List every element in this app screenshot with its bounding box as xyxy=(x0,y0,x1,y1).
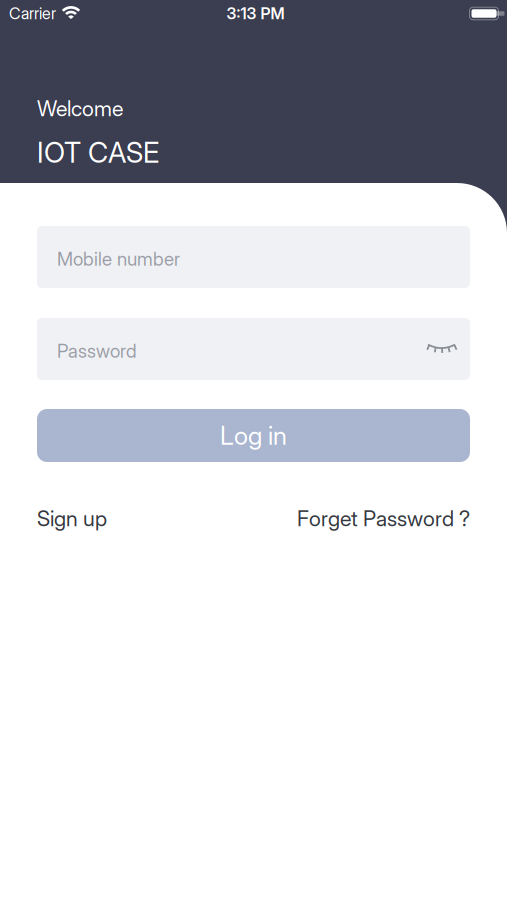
staticText: Welcome xyxy=(37,96,123,121)
staticText: Mobile number xyxy=(57,248,180,270)
button[interactable]: Password xyxy=(37,318,470,380)
button[interactable]: Show password xyxy=(428,343,455,354)
staticText: Carrier xyxy=(9,4,56,23)
staticText: Password xyxy=(57,340,137,362)
staticText: Sign up xyxy=(37,506,107,531)
button[interactable]: Sign up xyxy=(37,506,107,531)
button[interactable]: Forget Password ? xyxy=(297,506,470,531)
staticText: Log in xyxy=(220,421,287,450)
button[interactable]: Log in xyxy=(37,409,470,462)
staticText: IOT CASE xyxy=(37,136,159,169)
staticText: Forget Password ? xyxy=(297,506,470,531)
button[interactable]: Mobile number xyxy=(37,226,470,288)
staticText: 3:13 PM xyxy=(226,4,284,23)
